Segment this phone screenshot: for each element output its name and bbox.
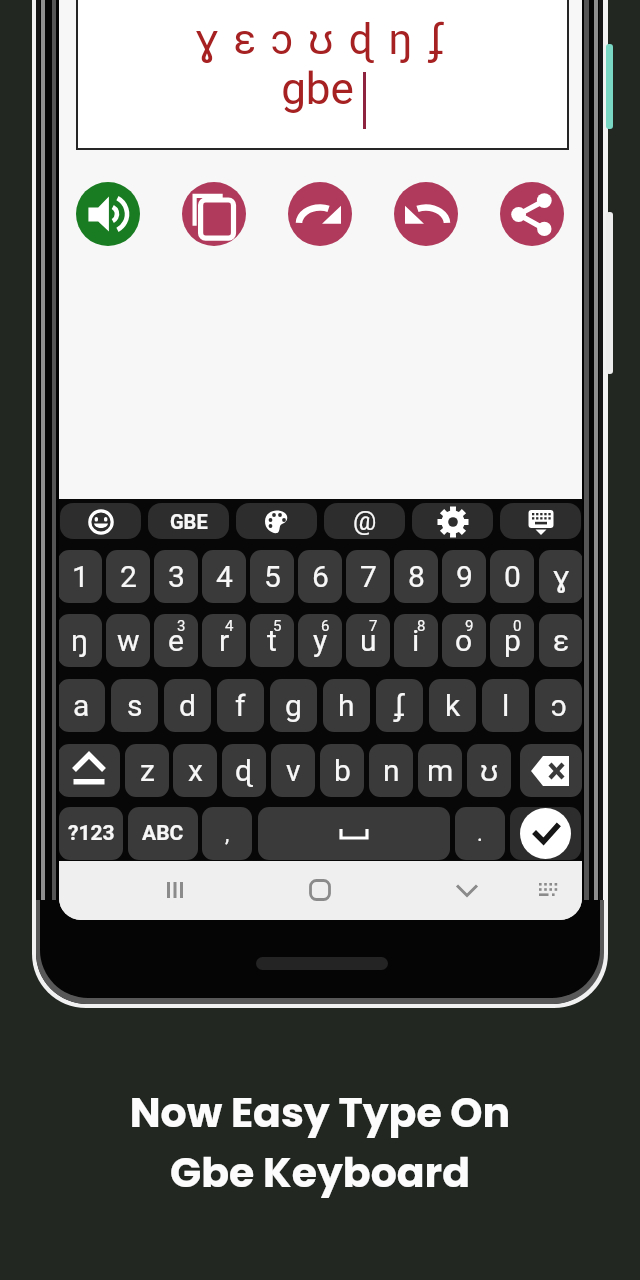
button[interactable]: 4 [202, 550, 246, 603]
button[interactable]: ɣ [539, 550, 582, 603]
button[interactable]: ABC [128, 807, 198, 860]
button[interactable]: At sign [324, 503, 405, 539]
button[interactable]: h [323, 679, 370, 732]
button[interactable]: Home [292, 862, 348, 918]
button[interactable]: Change keyboard [520, 862, 576, 918]
staticText: m [427, 753, 454, 788]
staticText: 7 [369, 617, 378, 635]
button[interactable]: 0 [490, 550, 534, 603]
staticText: 8 [408, 559, 425, 594]
button[interactable]: n [369, 744, 413, 797]
button[interactable]: i [394, 614, 438, 667]
button[interactable]: 3 [154, 550, 198, 603]
button[interactable]: Undo [394, 182, 458, 246]
staticText: 5 [264, 559, 281, 594]
button[interactable]: 9 [442, 550, 486, 603]
staticText: 9 [465, 617, 474, 635]
button[interactable]: GBE language [148, 503, 229, 539]
staticText: o [455, 623, 473, 658]
button[interactable]: y [298, 614, 342, 667]
button[interactable]: Enter [510, 807, 581, 860]
button[interactable]: f [217, 679, 264, 732]
button[interactable]: l [482, 679, 529, 732]
button[interactable]: Shift [59, 744, 120, 797]
button[interactable]: m [418, 744, 462, 797]
staticText: 3 [168, 559, 185, 594]
staticText: . [477, 821, 483, 847]
button[interactable]: t [250, 614, 294, 667]
button[interactable]: 7 [346, 550, 390, 603]
staticText: e [168, 623, 184, 658]
staticText: p [504, 623, 521, 658]
button[interactable]: g [270, 679, 317, 732]
button[interactable]: Recent apps [147, 862, 203, 918]
button[interactable]: Share [500, 182, 564, 246]
button[interactable]: ŋ [59, 614, 102, 667]
button[interactable]: Hide keyboard [439, 862, 495, 918]
button[interactable]: e [154, 614, 198, 667]
button[interactable]: ɛ [539, 614, 582, 667]
button[interactable]: 5 [250, 550, 294, 603]
button[interactable]: ʊ [467, 744, 511, 797]
button[interactable]: u [346, 614, 390, 667]
staticText: n [383, 753, 400, 788]
button[interactable]: 1 [59, 550, 102, 603]
staticText: @ [353, 506, 377, 536]
button[interactable]: p [490, 614, 534, 667]
button[interactable]: . [455, 807, 505, 860]
staticText: 0 [513, 617, 522, 635]
button[interactable]: ?123 [59, 807, 123, 860]
button[interactable]: Backspace [520, 744, 582, 797]
staticText: ɖ [235, 753, 253, 788]
button[interactable]: Theme [236, 503, 317, 539]
staticText: 1 [72, 559, 89, 594]
staticText: ɣ [553, 559, 570, 594]
staticText: v [286, 753, 301, 788]
button[interactable]: Speak [76, 182, 140, 246]
button[interactable]: a [59, 679, 105, 732]
button[interactable]: b [320, 744, 364, 797]
staticText: l [502, 688, 510, 723]
button[interactable]: ʄ [376, 679, 423, 732]
staticText: 0 [504, 559, 521, 594]
button[interactable]: Settings [412, 503, 493, 539]
staticText: 8 [417, 617, 426, 635]
button[interactable]: ɖ [222, 744, 266, 797]
staticText: 5 [273, 617, 282, 635]
staticText: ʄ [393, 688, 406, 723]
button[interactable]: x [173, 744, 217, 797]
button[interactable]: v [271, 744, 315, 797]
staticText: ɛ [553, 623, 570, 658]
staticText: g [285, 688, 302, 723]
staticText: 2 [120, 559, 137, 594]
button[interactable]: Emoji [60, 503, 141, 539]
button[interactable]: w [106, 614, 150, 667]
button[interactable]: d [164, 679, 211, 732]
button[interactable]: s [111, 679, 158, 732]
button[interactable]: Redo [288, 182, 352, 246]
staticText: 7 [360, 559, 377, 594]
button[interactable]: r [202, 614, 246, 667]
button[interactable]: k [429, 679, 476, 732]
staticText: ?123 [68, 821, 115, 846]
button[interactable]: Copy [182, 182, 246, 246]
button[interactable]: Keyboard [500, 503, 581, 539]
staticText: r [219, 623, 230, 658]
staticText: ʊ [480, 753, 499, 788]
button[interactable]: o [442, 614, 486, 667]
button[interactable]: 2 [106, 550, 150, 603]
staticText: b [334, 753, 351, 788]
button[interactable]: z [125, 744, 169, 797]
button[interactable]: 6 [298, 550, 342, 603]
staticText: i [412, 623, 420, 658]
staticText: f [235, 688, 246, 723]
staticText: 6 [312, 559, 329, 594]
staticText: u [360, 623, 377, 658]
button[interactable]: ɔ [535, 679, 582, 732]
button[interactable]: Space [258, 807, 450, 860]
staticText: t [267, 623, 277, 658]
button[interactable]: , [202, 807, 252, 860]
staticText: x [188, 753, 203, 788]
button[interactable]: 8 [394, 550, 438, 603]
staticText: y [313, 623, 328, 658]
